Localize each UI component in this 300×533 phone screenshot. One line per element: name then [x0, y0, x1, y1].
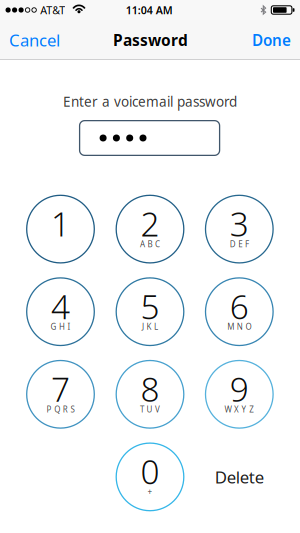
- button[interactable]: 6: [195, 271, 284, 353]
- staticText: 9: [230, 366, 249, 411]
- staticText: R: [63, 404, 68, 415]
- staticText: A: [140, 239, 145, 249]
- staticText: Done: [252, 30, 291, 50]
- staticText: 1: [51, 201, 70, 246]
- button[interactable]: 5: [105, 271, 194, 353]
- staticText: F: [245, 239, 249, 249]
- staticText: 5: [140, 283, 159, 329]
- staticText: W: [224, 404, 231, 415]
- staticText: J: [142, 321, 144, 332]
- button[interactable]: 7: [16, 353, 105, 435]
- staticText: C: [155, 239, 160, 249]
- staticText: H: [59, 321, 65, 332]
- staticText: S: [70, 404, 74, 415]
- staticText: 4: [51, 283, 70, 329]
- staticText: 11:04 AM: [126, 3, 173, 17]
- staticText: X: [234, 404, 239, 415]
- staticText: B: [147, 239, 152, 249]
- staticText: 2: [140, 201, 159, 246]
- staticText: U: [146, 404, 152, 415]
- button[interactable]: Delete: [195, 436, 284, 518]
- staticText: 6: [230, 283, 249, 329]
- staticText: T: [140, 404, 144, 415]
- staticText: E: [238, 239, 242, 249]
- staticText: Z: [249, 404, 254, 415]
- staticText: Y: [242, 404, 247, 415]
- staticText: P: [47, 404, 52, 415]
- staticText: D: [230, 239, 236, 249]
- staticText: Password: [113, 29, 188, 51]
- staticText: Q: [54, 404, 60, 415]
- button[interactable]: 4: [16, 271, 105, 353]
- button[interactable]: Done: [243, 20, 300, 60]
- button[interactable]: 0: [105, 436, 194, 518]
- staticText: 7: [51, 366, 70, 411]
- staticText: Cancel: [9, 29, 60, 51]
- staticText: V: [155, 404, 160, 415]
- button[interactable]: 2: [105, 188, 194, 270]
- staticText: 8: [140, 366, 159, 411]
- button[interactable]: 3: [195, 188, 284, 270]
- staticText: K: [146, 321, 151, 332]
- staticText: AT&T: [40, 3, 65, 17]
- button[interactable]: Cancel: [0, 20, 69, 60]
- button[interactable]: 9: [195, 353, 284, 435]
- staticText: +: [147, 487, 152, 497]
- staticText: Enter a voicemail password: [63, 92, 237, 111]
- button[interactable]: 8: [105, 353, 194, 435]
- staticText: N: [237, 321, 243, 332]
- staticText: I: [68, 321, 71, 332]
- button[interactable]: 1: [16, 188, 105, 270]
- staticText: Delete: [215, 465, 264, 488]
- staticText: M: [227, 321, 234, 332]
- staticText: L: [154, 321, 158, 332]
- staticText: G: [50, 321, 56, 332]
- staticText: 3: [230, 201, 249, 246]
- staticText: 0: [140, 449, 159, 494]
- staticText: O: [245, 321, 251, 332]
